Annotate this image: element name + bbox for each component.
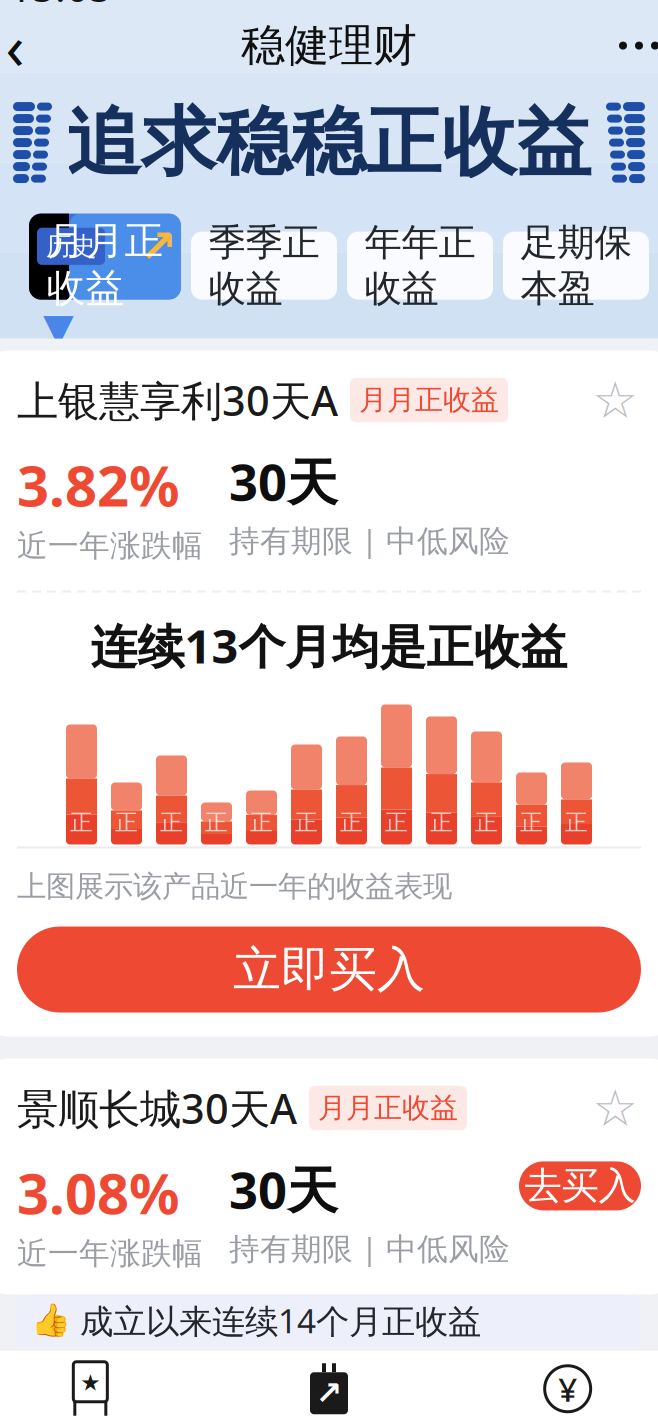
staticText: 立即买入 — [233, 940, 425, 999]
staticText: 成立以来连续14个月正收益 — [80, 1298, 481, 1343]
staticText: 正 — [250, 809, 273, 836]
staticText: ‹ — [5, 5, 24, 86]
staticText: 持有期限 | 中低风险 — [229, 520, 510, 560]
staticText: 👍 — [31, 1302, 71, 1339]
staticText: 正 — [160, 809, 183, 836]
staticText: 足期保本盈 — [520, 220, 631, 311]
staticText: 近一年涨跌幅 — [17, 1235, 203, 1272]
staticText: 正 — [385, 809, 408, 836]
staticText: 连续13个月均是正收益 — [90, 614, 567, 676]
staticText: 景顺长城30天A — [17, 1080, 297, 1135]
staticText: 月月正收益 — [359, 383, 499, 417]
staticText: 季季正收益 — [208, 220, 319, 311]
staticText: 正 — [115, 809, 138, 836]
staticText: ↗ — [139, 221, 177, 272]
staticText: 历史 — [46, 231, 96, 262]
staticText: 正 — [520, 809, 543, 836]
staticText: 持有期限 | 中低风险 — [229, 1228, 510, 1268]
staticText: 正 — [475, 809, 498, 836]
button[interactable]: ↗ — [210, 1362, 448, 1424]
button[interactable]: 返回 — [0, 18, 43, 74]
button[interactable]: ¥ — [448, 1362, 658, 1424]
staticText: 30天 — [229, 1155, 338, 1223]
staticText: 30天 — [229, 447, 338, 515]
staticText: 年年正收益 — [364, 220, 475, 311]
staticText: 稳健理财 — [241, 19, 417, 73]
staticText: ☆ — [592, 371, 637, 429]
staticText: ▼ — [43, 305, 74, 351]
button[interactable]: 收藏 — [589, 374, 641, 426]
staticText: 近一年涨跌幅 — [17, 527, 203, 564]
staticText: ¥ — [558, 1367, 577, 1411]
staticText: ↗ — [315, 1375, 342, 1411]
button[interactable]: 立即买入 — [17, 926, 641, 1012]
staticText: 正 — [205, 809, 228, 836]
button[interactable]: 收藏 — [589, 1082, 641, 1134]
button[interactable]: 季季正收益 — [191, 232, 337, 300]
staticText: 去买入 — [524, 1163, 635, 1209]
staticText: 正 — [295, 809, 318, 836]
staticText: 月月正收益 — [318, 1091, 458, 1125]
staticText: 15:05 — [9, 0, 112, 13]
staticText: 正 — [565, 809, 588, 836]
button[interactable]: 年年正收益 — [347, 232, 493, 300]
staticText: 3.08% — [17, 1155, 180, 1230]
button[interactable]: ★ — [0, 1362, 210, 1424]
staticText: 正 — [430, 809, 453, 836]
staticText: 正 — [340, 809, 363, 836]
staticText: 正 — [70, 809, 93, 836]
button[interactable]: 更多 — [607, 18, 658, 74]
staticText: 追求稳稳正收益 — [66, 97, 591, 188]
staticText: ★ — [80, 1370, 100, 1396]
button[interactable]: 历史 — [29, 214, 181, 300]
staticText: ☆ — [592, 1079, 637, 1137]
staticText: 3.82% — [17, 447, 180, 522]
staticText: 上银慧享利30天A — [17, 373, 338, 427]
staticText: 月月正收益 — [46, 217, 163, 312]
button[interactable]: 足期保本盈 — [503, 232, 649, 300]
button[interactable]: 去买入 — [519, 1161, 641, 1210]
staticText: 上图展示该产品近一年的收益表现 — [17, 868, 452, 904]
